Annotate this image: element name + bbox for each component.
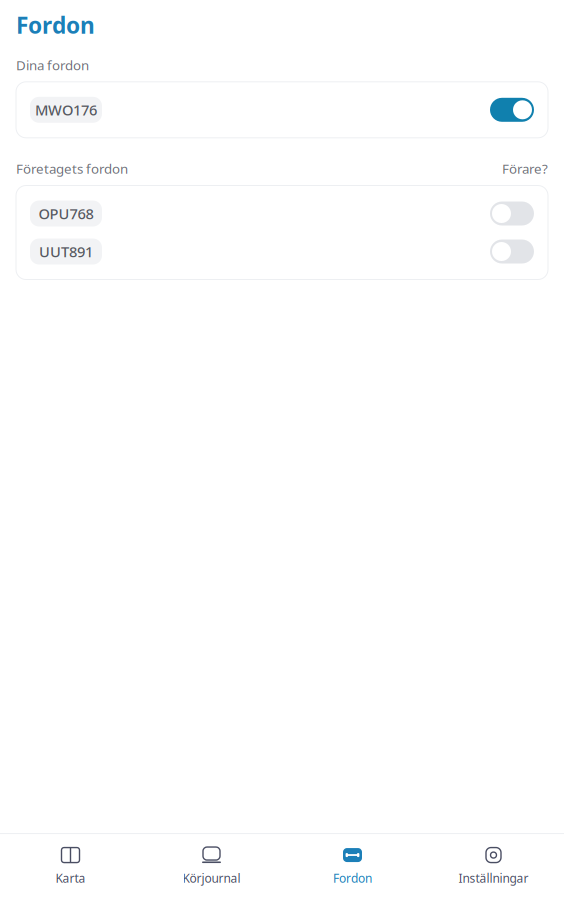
staticText: Inställningar (458, 870, 528, 886)
staticText: Fordon (16, 10, 95, 40)
button[interactable]: UUT891 (16, 235, 548, 267)
button[interactable]: Körjournal (141, 838, 282, 894)
staticText: Dina fordon (16, 56, 89, 74)
button[interactable]: MWO176 (16, 94, 548, 126)
staticText: Förare? (502, 160, 548, 177)
staticText: Företagets fordon (16, 160, 128, 177)
staticText: Fordon (333, 870, 372, 886)
staticText: Karta (55, 870, 85, 886)
button[interactable]: OPU768 (16, 197, 548, 229)
button[interactable]: Inställningar (423, 838, 564, 894)
staticText: UUT891 (39, 242, 93, 261)
staticText: MWO176 (35, 100, 97, 120)
staticText: OPU768 (38, 204, 93, 223)
staticText: Körjournal (182, 870, 240, 886)
button[interactable]: Fordon (282, 838, 423, 894)
button[interactable]: Karta (0, 838, 141, 894)
